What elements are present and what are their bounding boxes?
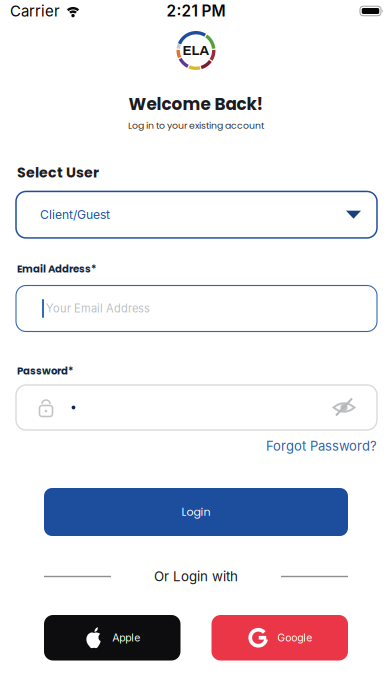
staticText: Apple [112, 631, 140, 644]
staticText: ELA [182, 43, 209, 58]
staticText: Log in to your existing account [128, 119, 264, 132]
button[interactable]: Forgot Password? [266, 438, 377, 454]
button[interactable]: Apple [44, 615, 180, 660]
staticText: 2:21 PM [166, 2, 225, 20]
staticText: Carrier [10, 2, 60, 20]
staticText: Email Address* [17, 262, 96, 276]
staticText: Or Login with [154, 568, 238, 584]
staticText: Login [181, 504, 210, 520]
staticText: Your Email Address [46, 302, 150, 315]
staticText: Google [277, 631, 312, 644]
button[interactable]: Show password [332, 397, 356, 417]
staticText: Welcome Back! [128, 92, 263, 116]
button[interactable]: Login [44, 488, 348, 536]
button[interactable]: Google [211, 615, 348, 660]
staticText: Password* [17, 364, 73, 378]
button[interactable]: Client/Guest [16, 191, 377, 238]
staticText: Select User [17, 163, 99, 182]
staticText: Forgot Password? [266, 438, 377, 454]
staticText: Client/Guest [40, 207, 110, 222]
